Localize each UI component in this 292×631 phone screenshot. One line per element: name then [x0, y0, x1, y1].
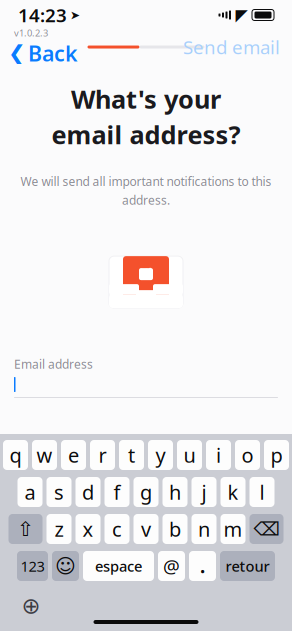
button[interactable]: y: [148, 440, 173, 470]
button[interactable]: s: [46, 477, 71, 507]
staticText: g: [140, 479, 152, 505]
staticText: ➤: [70, 8, 80, 22]
button[interactable]: @: [158, 551, 185, 581]
staticText: Back: [28, 39, 78, 67]
staticText: i: [216, 442, 221, 468]
staticText: v1.0.2.3: [14, 27, 48, 39]
staticText: Email address: [14, 356, 93, 372]
button[interactable]: Emoji: [52, 551, 79, 581]
staticText: j: [201, 479, 206, 505]
button[interactable]: r: [90, 440, 115, 470]
staticText: q: [9, 442, 21, 468]
staticText: f: [113, 479, 120, 505]
button[interactable]: Switch keyboard language: [18, 593, 44, 619]
button[interactable]: f: [104, 477, 129, 507]
button[interactable]: z: [46, 514, 71, 544]
staticText: email address?: [51, 118, 240, 151]
staticText: l: [259, 479, 264, 505]
button[interactable]: l: [249, 477, 274, 507]
staticText: r: [98, 442, 106, 468]
button[interactable]: c: [104, 514, 129, 544]
staticText: ☺: [55, 555, 76, 577]
staticText: w: [36, 442, 52, 468]
button[interactable]: n: [191, 514, 216, 544]
button[interactable]: o: [235, 440, 260, 470]
staticText: @: [163, 554, 180, 578]
button[interactable]: p: [264, 440, 289, 470]
staticText: b: [169, 516, 181, 542]
staticText: 14:23: [18, 3, 67, 27]
button[interactable]: v: [133, 514, 158, 544]
staticText: h: [169, 479, 181, 505]
button[interactable]: d: [75, 477, 100, 507]
staticText: retour: [225, 556, 269, 576]
staticText: We will send all important notifications…: [20, 173, 271, 189]
button[interactable]: j: [191, 477, 216, 507]
staticText: x: [82, 516, 93, 542]
button[interactable]: v1.0.2.3: [0, 25, 78, 69]
staticText: ⇧: [17, 518, 34, 540]
button[interactable]: h: [162, 477, 187, 507]
staticText: z: [54, 516, 63, 542]
staticText: a: [24, 479, 35, 505]
staticText: ◤: [235, 6, 247, 24]
button[interactable]: k: [220, 477, 245, 507]
staticText: .: [200, 554, 205, 578]
button[interactable]: e: [61, 440, 86, 470]
staticText: u: [183, 442, 195, 468]
staticText: n: [198, 516, 210, 542]
staticText: m: [223, 516, 242, 542]
button[interactable]: x: [75, 514, 100, 544]
button[interactable]: b: [162, 514, 187, 544]
staticText: t: [128, 442, 135, 468]
staticText: ⊕: [21, 593, 40, 619]
button[interactable]: m: [220, 514, 245, 544]
staticText: k: [227, 479, 238, 505]
staticText: p: [270, 442, 282, 468]
staticText: ⌫: [253, 518, 279, 540]
staticText: s: [54, 479, 64, 505]
staticText: address.: [122, 192, 170, 208]
button[interactable]: .: [189, 551, 216, 581]
button[interactable]: Delete: [249, 514, 283, 544]
staticText: y: [155, 442, 165, 468]
staticText: espace: [95, 556, 142, 576]
button[interactable]: w: [32, 440, 57, 470]
button[interactable]: retour: [220, 551, 275, 581]
staticText: c: [112, 516, 122, 542]
staticText: Hi: [139, 265, 152, 281]
button[interactable]: q: [3, 440, 28, 470]
staticText: Send email: [183, 35, 280, 59]
button[interactable]: espace: [83, 551, 154, 581]
button[interactable]: g: [133, 477, 158, 507]
staticText: v: [141, 516, 151, 542]
button[interactable]: t: [119, 440, 144, 470]
button[interactable]: i: [206, 440, 231, 470]
button[interactable]: a: [17, 477, 42, 507]
button[interactable]: 123: [17, 551, 48, 581]
button[interactable]: Send email: [171, 27, 292, 67]
staticText: o: [241, 442, 253, 468]
staticText: 123: [20, 556, 44, 576]
staticText: d: [82, 479, 94, 505]
button[interactable]: u: [177, 440, 202, 470]
staticText: e: [68, 442, 79, 468]
staticText: ❮: [8, 41, 26, 65]
button[interactable]: Shift: [8, 514, 42, 544]
staticText: What's your: [71, 82, 221, 116]
